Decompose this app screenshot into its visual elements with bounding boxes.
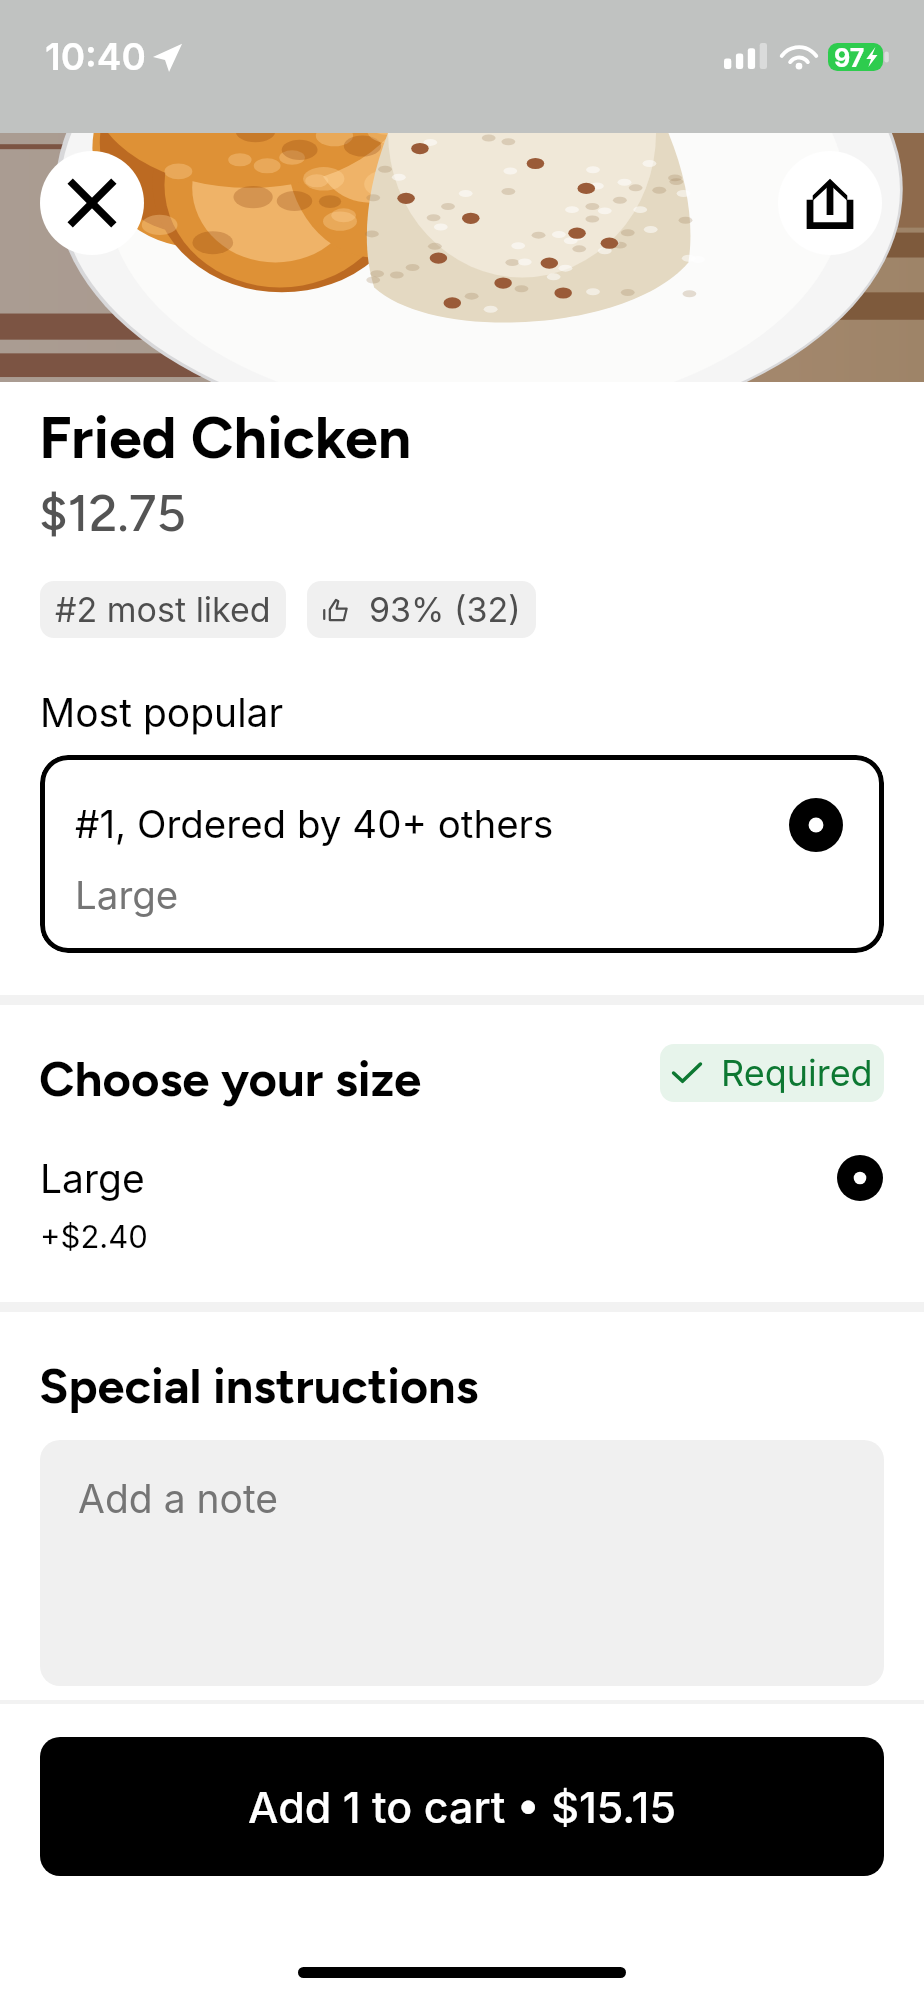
staticText: Add 1 to cart • $15.15 (248, 1781, 677, 1833)
staticText: Large (75, 872, 179, 919)
staticText: $12.75 (39, 483, 186, 544)
staticText: Choose your size (39, 1049, 422, 1108)
button[interactable]: Add a note (40, 1440, 884, 1686)
staticText: Large (40, 1155, 145, 1202)
staticText: 97 (834, 43, 865, 71)
staticText: Required (721, 1051, 873, 1095)
button[interactable]: #1, Ordered by 40+ others (40, 755, 884, 953)
staticText: Add a note (78, 1475, 279, 1522)
staticText: +$2.40 (40, 1218, 148, 1256)
staticText: 93% (32) (369, 589, 521, 630)
staticText: Special instructions (39, 1357, 479, 1415)
staticText: 10:40 (45, 34, 146, 79)
button[interactable]: Add 1 to cart • $15.15 (40, 1737, 884, 1876)
button[interactable]: Required (660, 1044, 884, 1102)
button[interactable]: Close (40, 151, 144, 255)
staticText: Most popular (40, 689, 284, 736)
staticText: Fried Chicken (39, 402, 412, 473)
button[interactable]: 93% (32) (307, 581, 536, 638)
button[interactable]: #2 most liked (40, 581, 286, 638)
button[interactable]: Share (778, 151, 882, 255)
staticText: #1, Ordered by 40+ others (75, 801, 554, 848)
staticText: #2 most liked (55, 589, 271, 630)
